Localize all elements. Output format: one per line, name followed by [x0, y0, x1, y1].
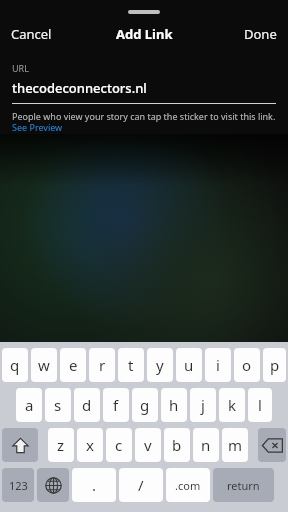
button[interactable]: k [219, 388, 245, 422]
staticText: x [86, 435, 94, 455]
button[interactable]: z [48, 428, 74, 462]
button[interactable]: e [60, 348, 86, 382]
staticText: q [10, 355, 20, 375]
button[interactable]: p [263, 348, 286, 382]
button[interactable]: g [132, 388, 158, 422]
button[interactable]: 123 [2, 468, 34, 502]
button[interactable]: f [103, 388, 129, 422]
button[interactable]: .com [166, 468, 210, 502]
button[interactable]: y [147, 348, 173, 382]
staticText: z [57, 435, 65, 455]
staticText: g [140, 395, 150, 415]
staticText: u [184, 355, 194, 375]
staticText: j [201, 395, 205, 415]
button[interactable]: l [248, 388, 272, 422]
staticText: v [144, 435, 152, 455]
staticText: k [228, 395, 237, 415]
staticText: s [54, 395, 62, 415]
button[interactable]: j [190, 388, 216, 422]
button[interactable]: d [74, 388, 100, 422]
button[interactable]: Shift [2, 428, 38, 462]
button[interactable]: h [161, 388, 187, 422]
staticText: l [258, 395, 262, 415]
button[interactable]: Change keyboard [37, 468, 69, 502]
staticText: Done [244, 25, 277, 43]
button[interactable]: v [135, 428, 161, 462]
button[interactable]: . [72, 468, 116, 502]
button[interactable]: x [77, 428, 103, 462]
staticText: p [270, 355, 280, 375]
button[interactable]: Cancel [0, 20, 63, 48]
staticText: n [201, 435, 211, 455]
button[interactable]: o [234, 348, 260, 382]
staticText: return [227, 478, 260, 493]
button[interactable]: Done [233, 20, 288, 48]
button[interactable]: u [176, 348, 202, 382]
button[interactable]: i [205, 348, 231, 382]
staticText: . [92, 475, 97, 495]
staticText: o [242, 355, 252, 375]
button[interactable]: s [45, 388, 71, 422]
button[interactable]: b [164, 428, 190, 462]
button[interactable]: thecodeconnectors.nl [12, 79, 276, 97]
button[interactable]: return [213, 468, 274, 502]
staticText: a [25, 395, 34, 415]
staticText: h [169, 395, 179, 415]
staticText: 123 [9, 478, 28, 493]
button[interactable]: / [119, 468, 163, 502]
staticText: / [138, 475, 144, 495]
staticText: f [113, 395, 119, 415]
button[interactable]: Backspace [258, 428, 286, 462]
staticText: People who view your story can tap the s… [12, 110, 276, 134]
staticText: URL [12, 62, 29, 74]
staticText: m [228, 435, 243, 455]
staticText: c [115, 435, 123, 455]
button[interactable]: c [106, 428, 132, 462]
staticText: .com [175, 478, 201, 493]
button[interactable]: m [222, 428, 248, 462]
staticText: t [128, 355, 134, 375]
staticText: w [38, 355, 50, 375]
button[interactable]: q [2, 348, 28, 382]
staticText: b [172, 435, 182, 455]
staticText: Add Link [116, 25, 173, 43]
button[interactable]: t [118, 348, 144, 382]
button[interactable]: r [89, 348, 115, 382]
staticText: i [216, 355, 220, 375]
button[interactable]: n [193, 428, 219, 462]
staticText: d [82, 395, 92, 415]
staticText: r [99, 355, 106, 375]
staticText: y [156, 355, 164, 375]
staticText: e [69, 355, 78, 375]
staticText: thecodeconnectors.nl [12, 79, 147, 97]
button[interactable]: a [16, 388, 42, 422]
staticText: Cancel [11, 25, 52, 43]
button[interactable]: w [31, 348, 57, 382]
